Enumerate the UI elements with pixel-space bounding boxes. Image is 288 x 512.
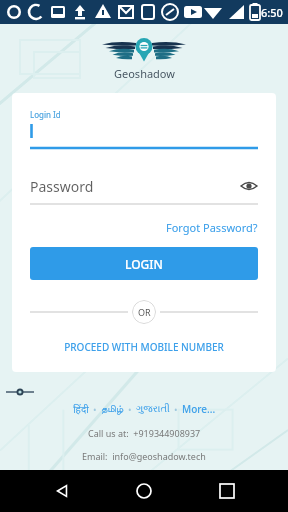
button[interactable]: Recents	[206, 470, 248, 512]
staticText: OR	[138, 306, 151, 318]
staticText: Geoshadow	[114, 66, 175, 81]
staticText: Password	[30, 177, 94, 196]
button[interactable]: हिंदी	[73, 402, 89, 416]
button[interactable]	[30, 120, 258, 150]
button[interactable]: More...	[182, 402, 216, 416]
button[interactable]: Forgot Password?	[166, 220, 258, 235]
button[interactable]: Home	[123, 470, 165, 512]
button[interactable]: Back	[41, 470, 83, 512]
other: Show password	[240, 177, 258, 195]
button[interactable]: PROCEED WITH MOBILE NUMBER	[30, 340, 258, 354]
staticText: Email: info@geoshadow.tech	[82, 450, 206, 462]
staticText: LOGIN	[125, 256, 163, 272]
staticText: •	[170, 404, 182, 415]
button[interactable]: Password	[30, 172, 258, 206]
staticText: 6:50	[261, 5, 283, 20]
button[interactable]: LOGIN	[30, 247, 258, 280]
button[interactable]: தமிழ்	[101, 404, 124, 414]
staticText: •	[124, 404, 136, 415]
staticText: Call us at: +919344908937	[88, 427, 201, 439]
staticText: PROCEED WITH MOBILE NUMBER	[64, 340, 224, 354]
staticText: Login Id	[30, 109, 61, 120]
staticText: •	[89, 404, 101, 415]
button[interactable]: ગુજરાતી	[136, 404, 170, 414]
